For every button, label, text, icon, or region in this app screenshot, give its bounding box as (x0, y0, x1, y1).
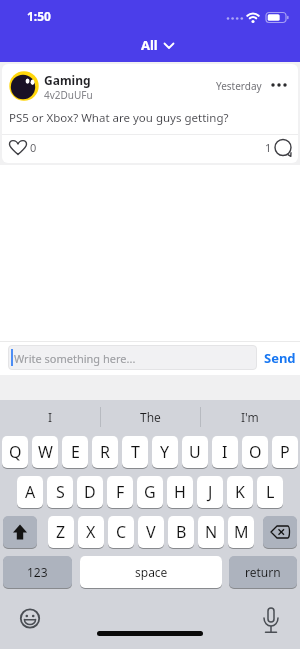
button[interactable]: N (198, 516, 224, 548)
staticText: K (235, 481, 245, 503)
button[interactable]: I'm (200, 404, 300, 430)
staticText: Gaming (44, 72, 91, 88)
button[interactable]: F (107, 476, 133, 508)
staticText: All (141, 36, 158, 54)
staticText: A (25, 481, 36, 503)
staticText: E (71, 441, 80, 463)
staticText: H (174, 481, 186, 503)
staticText: D (84, 481, 96, 503)
button[interactable]: G (137, 476, 163, 508)
button[interactable]: All (141, 36, 174, 54)
staticText: W (38, 441, 53, 463)
button[interactable]: L (257, 476, 283, 508)
staticText: 1 (265, 140, 272, 155)
staticText: Send (264, 349, 296, 367)
button[interactable] (20, 608, 41, 629)
button[interactable]: E (62, 436, 88, 468)
staticText: T (131, 441, 140, 463)
button[interactable]: W (32, 436, 58, 468)
button[interactable] (9, 138, 27, 155)
staticText: Q (9, 441, 22, 463)
button[interactable]: S (47, 476, 73, 508)
staticText: M (234, 521, 249, 543)
staticText: C (116, 521, 127, 543)
button[interactable]: B (168, 516, 194, 548)
staticText: PS5 or Xbox? What are you guys getting? (9, 110, 229, 126)
button[interactable]: Send (260, 342, 300, 374)
button[interactable] (270, 78, 290, 88)
button[interactable]: O (242, 436, 268, 468)
button[interactable]: 123 (3, 556, 72, 588)
staticText: 4v2DuUFu (44, 88, 93, 102)
staticText: R (100, 441, 110, 463)
staticText: O (249, 441, 262, 463)
button[interactable]: H (167, 476, 193, 508)
staticText: The (140, 409, 161, 425)
staticText: J (208, 481, 213, 503)
staticText: F (116, 481, 125, 503)
staticText: 123 (27, 564, 48, 580)
button[interactable]: Z (48, 516, 74, 548)
staticText: Y (160, 441, 170, 463)
staticText: I (222, 441, 228, 463)
button[interactable]: U (182, 436, 208, 468)
staticText: L (266, 481, 275, 503)
button[interactable]: X (78, 516, 104, 548)
button[interactable]: Y (152, 436, 178, 468)
staticText: B (176, 521, 187, 543)
staticText: I (48, 409, 53, 425)
staticText: V (146, 521, 156, 543)
button[interactable]: P (272, 436, 298, 468)
button[interactable]: D (77, 476, 103, 508)
staticText: I'm (241, 409, 259, 425)
staticText: G (144, 481, 156, 503)
button[interactable]: V (138, 516, 164, 548)
staticText: Yesterday (216, 79, 262, 93)
staticText: 1:50 (27, 8, 51, 24)
button[interactable]: K (227, 476, 253, 508)
staticText: X (86, 521, 96, 543)
button[interactable] (263, 516, 297, 548)
button[interactable] (3, 516, 37, 548)
button[interactable]: T (122, 436, 148, 468)
staticText: P (280, 441, 290, 463)
staticText: Write something here... (14, 351, 136, 366)
button[interactable]: The (100, 404, 200, 430)
button[interactable]: return (229, 556, 297, 588)
staticText: U (189, 441, 201, 463)
staticText: Z (56, 521, 66, 543)
button[interactable]: I (0, 404, 100, 430)
staticText: N (205, 521, 218, 543)
button[interactable]: I (212, 436, 238, 468)
button[interactable]: Write something here... (8, 345, 257, 370)
button[interactable]: M (228, 516, 254, 548)
button[interactable] (262, 606, 280, 634)
button[interactable]: Q (2, 436, 28, 468)
staticText: S (56, 481, 65, 503)
button[interactable] (274, 139, 294, 158)
button[interactable]: C (108, 516, 134, 548)
button[interactable]: space (80, 556, 222, 588)
button[interactable]: Gaming (2, 64, 298, 163)
staticText: space (135, 564, 168, 580)
button[interactable]: R (92, 436, 118, 468)
button[interactable]: A (17, 476, 43, 508)
staticText: return (245, 564, 281, 580)
staticText: 0 (30, 140, 37, 155)
button[interactable]: J (197, 476, 223, 508)
